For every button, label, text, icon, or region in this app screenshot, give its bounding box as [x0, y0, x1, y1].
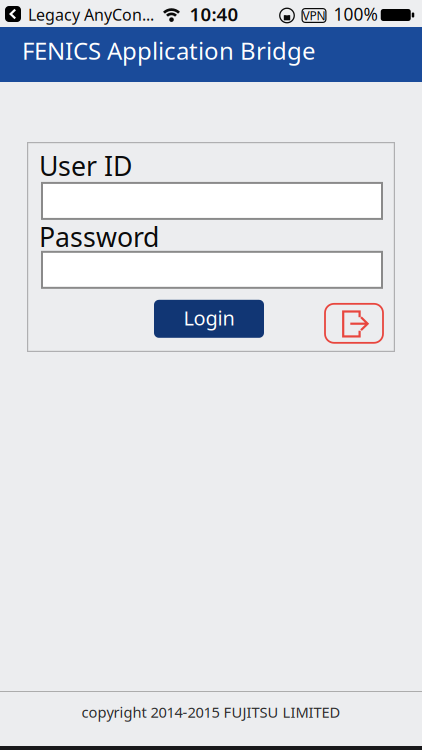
button[interactable]: [325, 300, 383, 343]
button[interactable]: Login: [154, 300, 264, 338]
staticText: copyright 2014-2015 FUJITSU LIMITED: [81, 702, 340, 722]
staticText: Legacy AnyCon...: [28, 4, 154, 25]
staticText: Login: [183, 304, 234, 331]
staticText: 100%: [333, 2, 377, 25]
staticText: VPN: [302, 7, 325, 23]
button[interactable]: [41, 182, 383, 220]
button[interactable]: [5, 6, 21, 22]
staticText: User ID: [39, 148, 132, 183]
staticText: Password: [39, 219, 159, 254]
button[interactable]: [41, 251, 383, 289]
staticText: FENICS Application Bridge: [22, 35, 316, 66]
staticText: 10:40: [189, 2, 238, 26]
